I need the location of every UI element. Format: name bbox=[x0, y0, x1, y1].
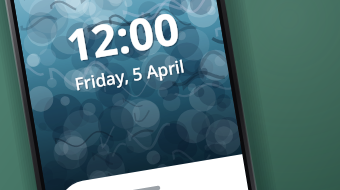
button[interactable]: Phone lock screen promo image bbox=[0, 0, 340, 190]
